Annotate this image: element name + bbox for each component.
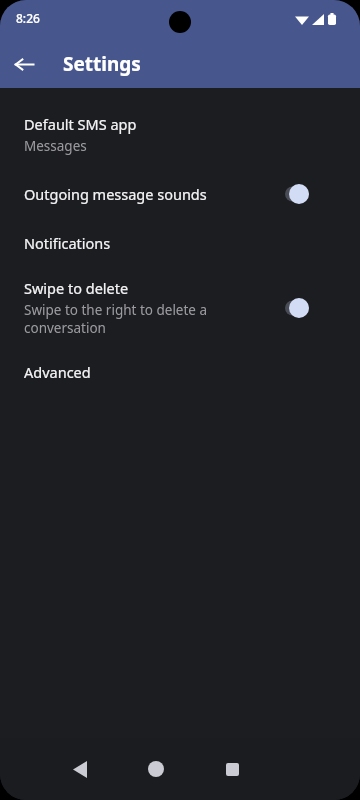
staticText: Advanced (24, 362, 91, 382)
button[interactable]: Default SMS app (0, 102, 360, 168)
button[interactable]: Recent apps (208, 745, 256, 793)
button[interactable]: Outgoing message sounds (0, 168, 360, 221)
staticText: Default SMS app (24, 114, 137, 134)
button[interactable]: Back (0, 40, 48, 88)
staticText: 8:26 (16, 10, 40, 26)
staticText: Notifications (24, 233, 111, 253)
button[interactable]: Advanced (0, 350, 360, 395)
button[interactable]: Home (132, 745, 180, 793)
staticText: Swipe to the right to delete a conversat… (24, 301, 268, 337)
staticText: Messages (24, 137, 87, 155)
button[interactable]: Swipe to delete (0, 266, 360, 350)
staticText: Settings (63, 51, 141, 77)
staticText: Outgoing message sounds (24, 184, 207, 204)
staticText: Swipe to delete (24, 278, 129, 298)
button[interactable]: Notifications (0, 221, 360, 266)
button[interactable]: Toggle Outgoing message sounds (274, 180, 314, 208)
button[interactable]: Toggle Swipe to delete (274, 294, 314, 322)
button[interactable]: Back (56, 745, 104, 793)
